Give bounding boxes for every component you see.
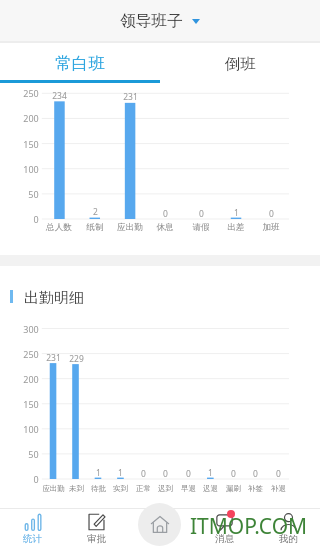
staticText: 补签	[248, 484, 263, 493]
staticText: 50	[28, 448, 39, 460]
staticText: 100	[23, 163, 39, 175]
staticText: 150	[23, 398, 39, 410]
staticText: 0	[33, 213, 39, 225]
staticText: 正常	[136, 484, 151, 493]
staticText: 200	[23, 112, 39, 124]
button[interactable]: 统计	[0, 508, 64, 550]
button[interactable]: 倒班	[160, 43, 320, 83]
staticText: 0	[269, 208, 274, 220]
staticText: 0	[231, 468, 236, 480]
staticText: 应出勤	[117, 222, 143, 233]
staticText: 出差	[227, 222, 245, 233]
staticText: 150	[23, 138, 39, 150]
staticText: 0	[186, 468, 191, 480]
staticText: 200	[23, 373, 39, 385]
staticText: 迟退	[203, 484, 218, 493]
staticText: 请假	[192, 222, 210, 233]
staticText: 250	[23, 87, 39, 99]
staticText: 待批	[91, 484, 106, 493]
staticText: 统计	[23, 533, 42, 545]
staticText: 0	[199, 208, 204, 220]
staticText: 1	[208, 467, 213, 479]
staticText: 实到	[113, 484, 128, 493]
staticText: ITMOP.COM	[190, 512, 308, 541]
staticText: 231	[46, 352, 61, 364]
button[interactable]: 消息	[192, 508, 256, 550]
staticText: 231	[123, 91, 138, 103]
staticText: 234	[52, 90, 67, 102]
staticText: 我的	[279, 533, 298, 545]
staticText: 0	[141, 468, 146, 480]
button[interactable]: 领导班子	[112, 5, 208, 37]
staticText: 领导班子	[120, 11, 183, 31]
staticText: 50	[28, 188, 39, 200]
staticText: 300	[23, 323, 39, 335]
button[interactable]: Home	[138, 503, 181, 546]
staticText: 早退	[181, 484, 196, 493]
staticText: 休息	[156, 222, 174, 233]
staticText: 1	[234, 207, 239, 219]
staticText: 审批	[87, 533, 106, 545]
staticText: 250	[23, 348, 39, 360]
staticText: 总人数	[46, 222, 72, 233]
button[interactable]: 出勤明细	[10, 289, 84, 304]
staticText: 迟到	[158, 484, 173, 493]
staticText: 未到	[69, 484, 84, 493]
staticText: 0	[163, 468, 168, 480]
staticText: 0	[33, 473, 39, 485]
staticText: 加班	[262, 222, 280, 233]
staticText: 纸制	[86, 222, 104, 233]
staticText: 倒班	[225, 54, 256, 73]
staticText: 0	[163, 208, 168, 220]
button[interactable]: 常白班	[0, 43, 160, 83]
staticText: 100	[23, 423, 39, 435]
staticText: 0	[276, 468, 281, 480]
staticText: 出勤明细	[24, 289, 84, 304]
staticText: 2	[93, 206, 98, 218]
staticText: 应出勤	[42, 484, 65, 493]
staticText: 0	[253, 468, 258, 480]
staticText: 229	[69, 353, 84, 365]
staticText: 1	[118, 467, 123, 479]
staticText: 1	[96, 467, 101, 479]
button[interactable]: 审批	[64, 508, 128, 550]
button[interactable]: 我的	[256, 508, 320, 550]
staticText: 漏刷	[226, 484, 241, 493]
staticText: 消息	[215, 533, 234, 545]
staticText: 常白班	[55, 53, 105, 74]
staticText: 补退	[271, 484, 286, 493]
